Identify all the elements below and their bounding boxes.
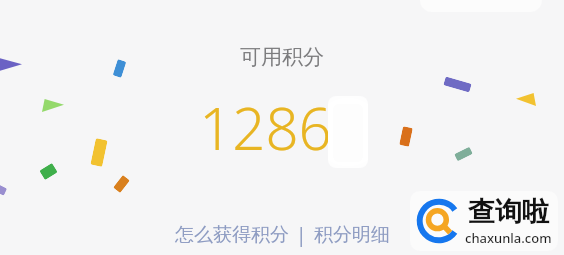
staticText: 12866 xyxy=(199,88,365,167)
staticText: 可用积分 xyxy=(240,44,324,70)
button[interactable]: 怎么获得积分 xyxy=(173,219,291,251)
other: chaxunla.com watermark xyxy=(410,191,558,251)
staticText: chaxunla.com xyxy=(465,229,552,247)
button[interactable]: 积分明细 xyxy=(312,219,392,251)
staticText: 积分明细 xyxy=(314,223,390,247)
staticText: | xyxy=(291,222,312,248)
staticText: 怎么获得积分 xyxy=(175,223,289,247)
staticText: 查询啦 xyxy=(468,195,549,229)
